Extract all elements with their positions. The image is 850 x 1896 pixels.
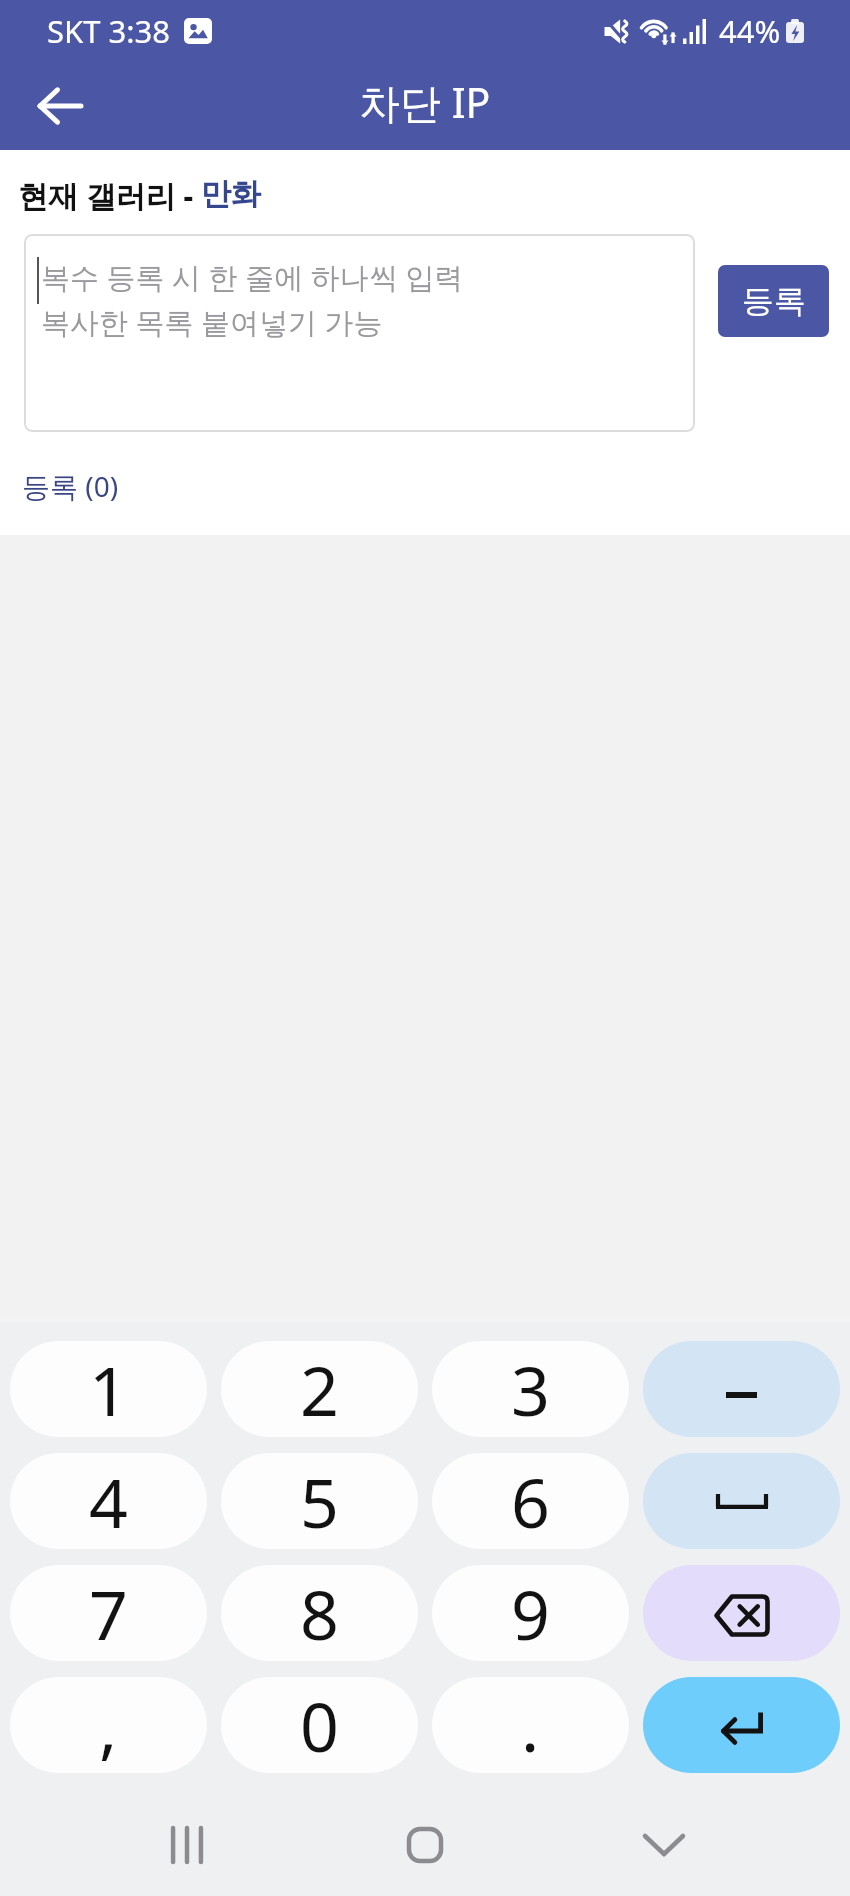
staticText: 3: [511, 1343, 550, 1436]
staticText: 7: [89, 1567, 128, 1660]
button[interactable]: Space: [643, 1453, 840, 1549]
button[interactable]: Hide keyboard: [612, 1795, 716, 1894]
staticText: 등록: [742, 281, 806, 321]
button[interactable]: .: [432, 1677, 629, 1773]
staticText: ,: [99, 1679, 118, 1772]
staticText: 등록 (0): [22, 467, 119, 505]
other: Backspace: [714, 1594, 770, 1637]
button[interactable]: Home: [373, 1795, 477, 1894]
button[interactable]: ,: [10, 1677, 207, 1773]
button[interactable]: 4: [10, 1453, 207, 1549]
staticText: 4: [89, 1455, 128, 1548]
button[interactable]: 등록: [718, 265, 829, 337]
staticText: 2: [300, 1343, 339, 1436]
staticText: SKT 3:38: [47, 10, 171, 52]
other: Enter: [721, 1710, 763, 1740]
button[interactable]: 9: [432, 1565, 629, 1661]
button[interactable]: 6: [432, 1453, 629, 1549]
button[interactable]: Backspace: [643, 1565, 840, 1661]
staticText: 복사한 목록 붙여넣기 가능: [41, 302, 383, 342]
other: Space: [716, 1493, 768, 1509]
button[interactable]: Minus: [643, 1341, 840, 1437]
staticText: 1: [89, 1343, 128, 1436]
button[interactable]: 5: [221, 1453, 418, 1549]
staticText: 차단 IP: [359, 74, 491, 130]
button[interactable]: 1: [10, 1341, 207, 1437]
staticText: 44%: [719, 10, 781, 52]
button[interactable]: Recents: [135, 1795, 239, 1894]
button[interactable]: 8: [221, 1565, 418, 1661]
button[interactable]: 복수 등록 시 한 줄에 하나씩 입력: [24, 234, 695, 432]
button[interactable]: 7: [10, 1565, 207, 1661]
button[interactable]: 2: [221, 1341, 418, 1437]
button[interactable]: 3: [432, 1341, 629, 1437]
staticText: 만화: [201, 175, 261, 213]
staticText: 복수 등록 시 한 줄에 하나씩 입력: [41, 257, 464, 297]
staticText: 6: [511, 1455, 550, 1548]
staticText: 8: [300, 1567, 339, 1660]
staticText: 5: [300, 1455, 339, 1548]
staticText: .: [521, 1679, 540, 1772]
button[interactable]: Enter: [643, 1677, 840, 1773]
button[interactable]: Back: [18, 64, 102, 148]
staticText: 9: [511, 1567, 550, 1660]
staticText: 0: [300, 1679, 339, 1772]
button[interactable]: 등록 (0): [22, 467, 119, 505]
staticText: 현재 갤러리 -: [18, 175, 201, 216]
button[interactable]: 0: [221, 1677, 418, 1773]
